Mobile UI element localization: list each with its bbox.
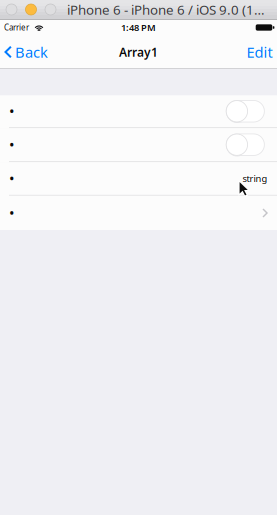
staticText: Array1	[119, 44, 158, 60]
button[interactable]: •	[0, 162, 277, 196]
button[interactable]: •	[0, 128, 277, 162]
staticText: Back	[15, 42, 48, 62]
button[interactable]: Back	[0, 36, 54, 68]
staticText: string	[242, 172, 267, 185]
button[interactable]: Close window	[6, 4, 17, 15]
button[interactable]: Zoom window	[45, 4, 56, 15]
button[interactable]: •	[0, 196, 277, 230]
staticText: •	[9, 169, 15, 188]
button[interactable]: Edit	[238, 36, 277, 68]
staticText: Carrier	[4, 22, 29, 33]
staticText: 1:48 PM	[121, 21, 156, 34]
staticText: •	[9, 203, 15, 223]
staticText: Edit	[246, 42, 272, 62]
button[interactable]: •	[0, 95, 277, 128]
staticText: •	[9, 135, 15, 154]
staticText: •	[9, 101, 15, 121]
button[interactable]: Minimize window	[25, 4, 36, 15]
staticText: iPhone 6 - iPhone 6 / iOS 9.0 (1…	[67, 1, 265, 18]
